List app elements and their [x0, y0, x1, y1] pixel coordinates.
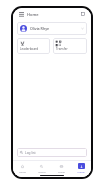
button[interactable]: Log list: [17, 148, 87, 157]
button[interactable]: Menu: [17, 10, 25, 18]
button[interactable]: Wallet: [51, 161, 71, 174]
button[interactable]: Olivia Rhye: [17, 22, 87, 35]
staticText: Transfer: [56, 47, 68, 51]
staticText: Search: [38, 170, 46, 173]
staticText: Wallet: [58, 170, 65, 173]
button[interactable]: Profile: [71, 161, 91, 174]
button[interactable]: Home: [13, 161, 32, 174]
button[interactable]: Transfer: [53, 38, 87, 54]
staticText: Log list: [25, 151, 36, 155]
staticText: Leaderboard: [20, 47, 39, 51]
staticText: Olivia Rhye: [30, 26, 50, 31]
other: Leaderboard: [20, 41, 25, 46]
button[interactable]: Search: [32, 161, 51, 174]
button[interactable]: Leaderboard: [17, 38, 50, 54]
staticText: Home: [27, 12, 39, 17]
staticText: Home: [19, 170, 26, 173]
staticText: Profile: [77, 170, 85, 173]
button[interactable]: Notifications: [79, 10, 87, 18]
other: Transfer: [56, 41, 61, 46]
